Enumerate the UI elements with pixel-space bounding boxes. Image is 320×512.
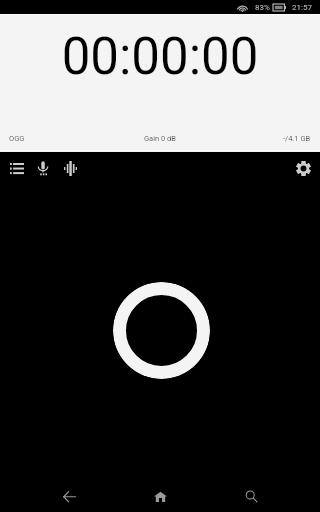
button[interactable]: Recordings list [4, 155, 30, 181]
button[interactable]: Waveform [57, 155, 83, 181]
button[interactable]: Settings [290, 155, 316, 181]
staticText: 00:00:00 [0, 27, 320, 87]
button[interactable]: Back [53, 480, 85, 512]
button[interactable]: Microphone [30, 155, 56, 181]
button[interactable]: Home [144, 480, 176, 512]
staticText: Gain 0 dB [144, 134, 176, 143]
staticText: 83% [255, 3, 270, 12]
button[interactable]: Record [113, 282, 210, 379]
staticText: -/4.1 GB [283, 134, 311, 143]
staticText: 21:57 [292, 3, 312, 12]
staticText: OGG [9, 134, 25, 143]
button[interactable]: Search [235, 480, 267, 512]
